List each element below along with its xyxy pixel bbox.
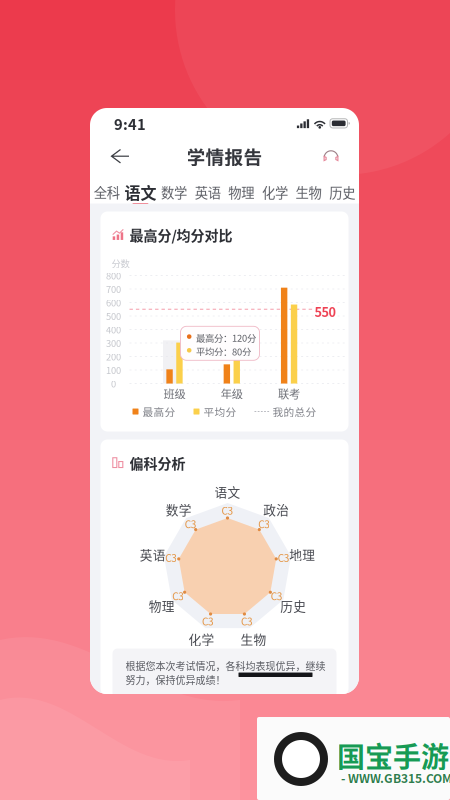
staticText: 平均分 [203,404,236,419]
staticText: 联考 [278,385,300,402]
staticText: 化学 [262,182,288,202]
button[interactable]: 历史 [325,173,359,205]
staticText: 政治 [263,500,289,518]
staticText: 生物 [240,630,266,648]
staticText: 生物 [296,182,322,202]
staticText: C3 [165,550,177,565]
staticText: C3 [221,503,233,518]
staticText: 历史 [329,182,355,202]
staticText: 0 [111,377,116,390]
button[interactable]: 生物 [292,173,325,205]
staticText: C3 [202,614,214,628]
button[interactable]: 语文 [124,173,157,205]
staticText: 年级 [221,385,243,402]
staticText: 200 [106,350,121,363]
staticText: 物理 [149,596,175,615]
button[interactable]: 化学 [258,173,292,205]
staticText: 历史 [280,596,306,615]
staticText: 800 [106,269,121,282]
button[interactable]: 客服 [315,139,347,173]
staticText: 分数 [111,256,129,270]
staticText: 最高分/均分对比 [129,224,232,245]
staticText: 地理 [289,545,315,563]
staticText: 100 [106,363,121,377]
button[interactable]: 全科 [90,173,124,205]
staticText: 700 [106,282,121,296]
staticText: C3 [172,589,184,603]
staticText: C3 [278,550,290,565]
staticText: 300 [106,336,121,350]
staticText: 物理 [228,182,254,202]
staticText: 全科 [94,182,120,202]
button[interactable]: 物理 [224,173,258,205]
staticText: 英语 [140,545,166,563]
staticText: 努力，保持优异成绩！ [125,672,225,687]
staticText: 数学 [161,182,187,202]
staticText: C3 [271,589,283,603]
button[interactable]: 返回 [98,139,134,173]
staticText: 400 [106,323,121,336]
staticText: 学情报告 [186,142,262,169]
staticText: C3 [241,614,253,628]
staticText: 根据您本次考试情况，各科均表现优异，继续 [125,658,325,673]
staticText: 语文 [124,180,156,204]
staticText: 数学 [166,500,192,518]
staticText: 英语 [195,182,221,202]
staticText: 平均分：80分 [196,345,251,358]
staticText: 班级 [163,385,185,402]
staticText: 最高分 [142,404,175,419]
staticText: C3 [185,517,197,531]
staticText: 语文 [214,482,240,501]
button[interactable]: 数学 [157,173,191,205]
staticText: 最高分：120分 [196,331,256,344]
staticText: 500 [106,309,121,323]
button[interactable]: 英语 [191,173,224,205]
staticText: 9:41 [114,113,146,134]
staticText: 化学 [188,630,214,648]
staticText: - WWW.GB315.COM - [341,769,450,786]
staticText: 600 [106,296,121,309]
staticText: 国宝手游网 [337,735,450,775]
staticText: 我的总分 [272,404,316,419]
staticText: 偏科分析 [129,452,185,473]
staticText: C3 [258,517,270,531]
staticText: 550 [314,302,335,320]
